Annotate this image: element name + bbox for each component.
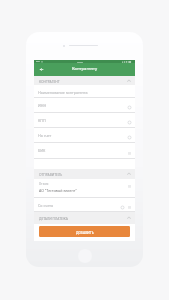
staticText: ДЕТАЛИ ПЛАТЕЖА <box>39 216 68 220</box>
staticText: От кого <box>39 182 49 186</box>
button[interactable]: Со счета <box>34 198 135 212</box>
button[interactable]: ИНН <box>34 98 135 113</box>
button[interactable]: ОТПРАВИТЕЛЬ <box>34 169 135 179</box>
button[interactable]: На счет <box>34 128 135 143</box>
button[interactable]: От кого <box>34 179 135 198</box>
button[interactable]: КПП <box>34 113 135 128</box>
staticText: Контрагенту <box>72 66 98 72</box>
staticText: КПП <box>38 118 46 123</box>
staticText: БИК <box>38 148 46 153</box>
staticText: Наименование контрагента <box>38 90 88 95</box>
staticText: мтс <box>36 60 40 63</box>
staticText: ДОБАВИТЬ <box>76 230 94 234</box>
staticText: На счет <box>38 133 52 138</box>
staticText: КОНТРАГЕНТ <box>39 79 60 83</box>
staticText: 16:21 <box>77 60 84 63</box>
staticText: Со счета <box>38 203 54 208</box>
button[interactable]: Назад <box>36 64 47 75</box>
button[interactable]: Наименование контрагента <box>34 85 135 98</box>
button[interactable]: БИК <box>34 143 135 159</box>
button[interactable]: ДОБАВИТЬ <box>39 226 130 237</box>
button[interactable]: КОНТРАГЕНТ <box>34 76 135 85</box>
button[interactable]: ДЕТАЛИ ПЛАТЕЖА <box>34 212 135 224</box>
staticText: ОТПРАВИТЕЛЬ <box>39 172 63 176</box>
staticText: ИНН <box>38 103 47 108</box>
staticText: АО "Тестовый клиент" <box>39 188 77 193</box>
